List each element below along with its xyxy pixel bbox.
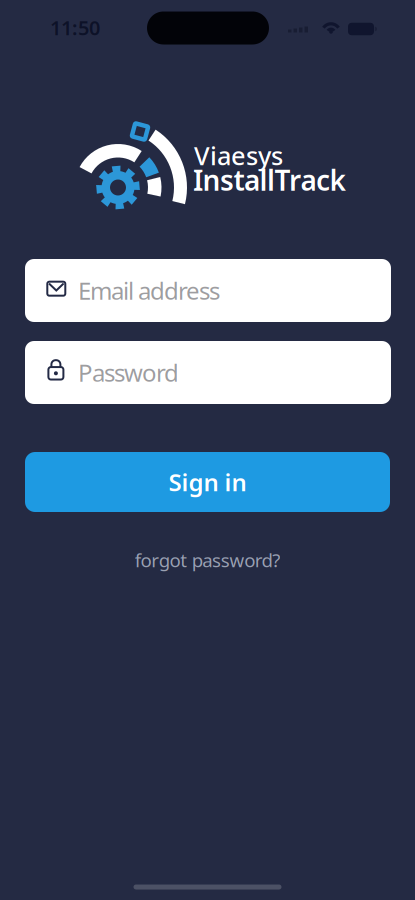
staticText: Viaesys (194, 139, 283, 172)
staticText: Sign in (168, 466, 246, 498)
button[interactable]: Sign in (25, 452, 390, 512)
button[interactable]: forgot password? (135, 548, 280, 572)
staticText: 11:50 (50, 14, 100, 41)
button[interactable]: Email address (25, 259, 391, 322)
staticText: Email address (78, 275, 220, 306)
staticText: forgot password? (135, 548, 280, 572)
staticText: InstallTrack (193, 161, 345, 199)
button[interactable]: Password (25, 341, 391, 404)
staticText: Password (78, 357, 179, 388)
